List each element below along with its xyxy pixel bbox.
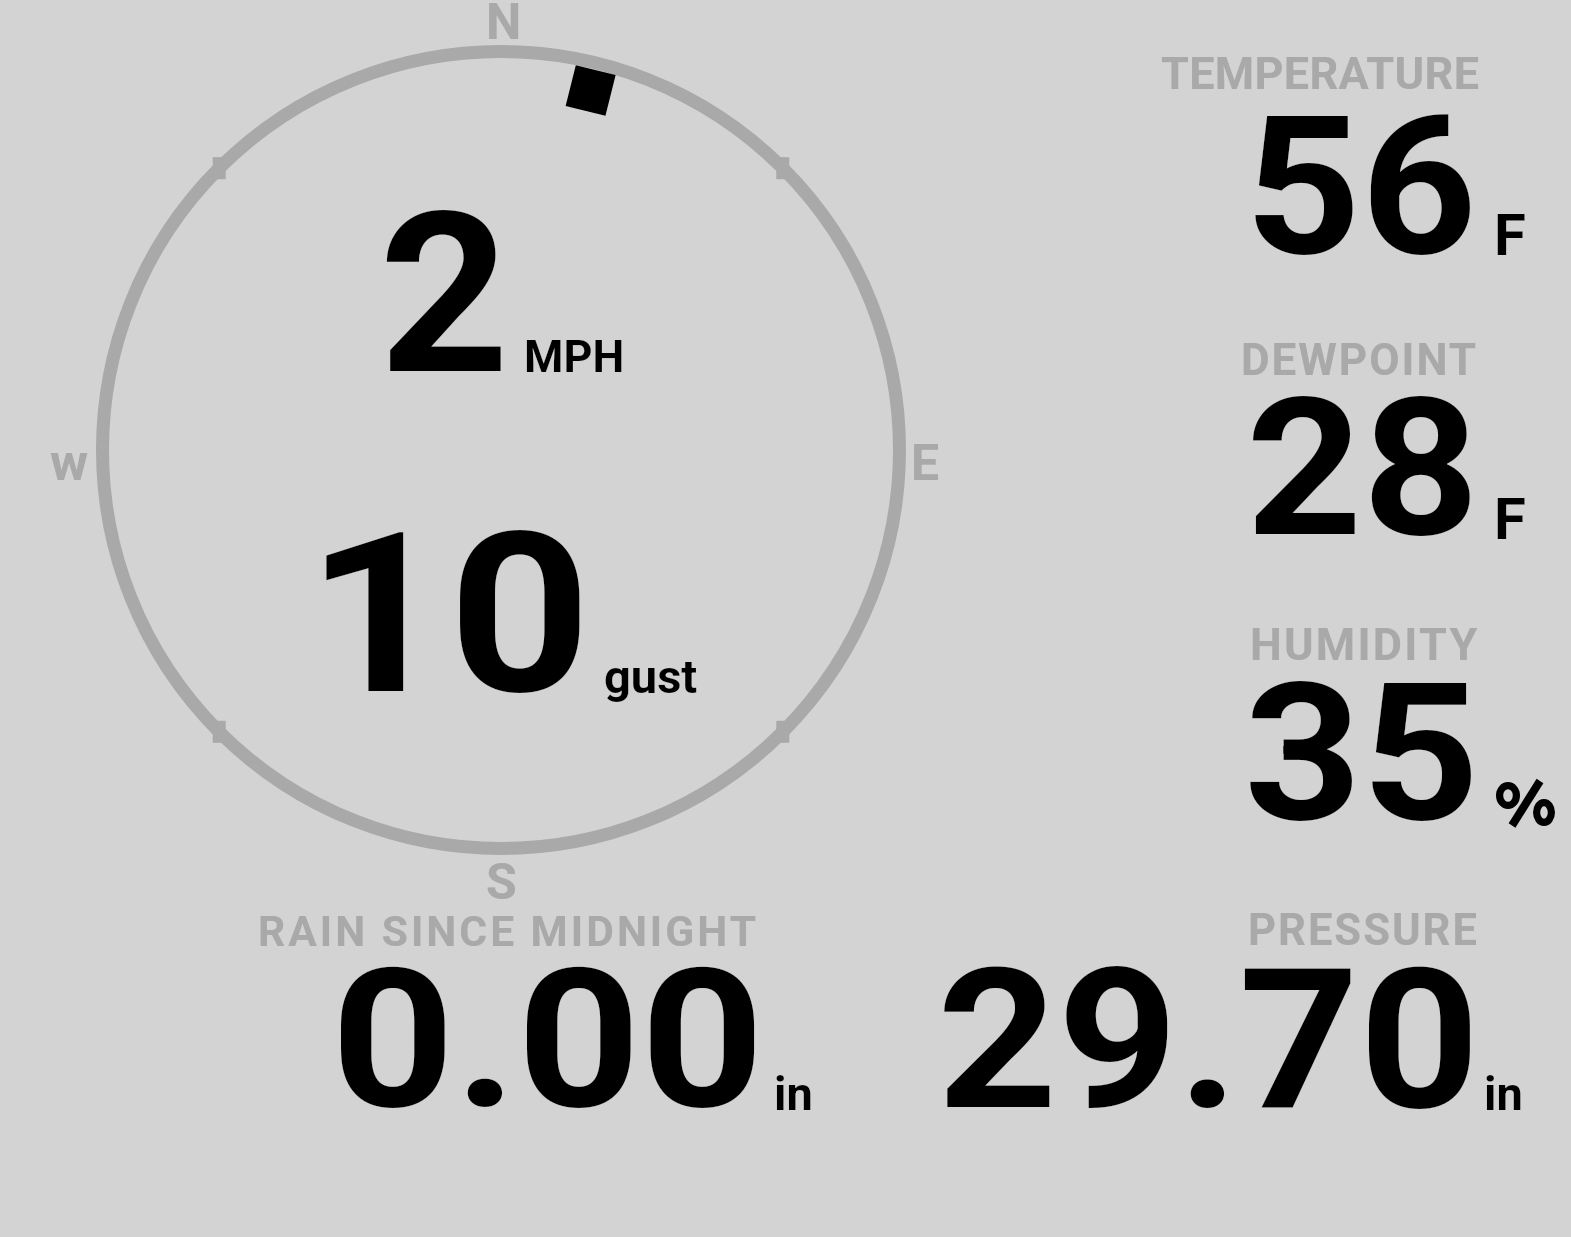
- staticText: MPH: [524, 330, 625, 383]
- staticText: N: [486, 0, 522, 52]
- staticText: gust: [604, 649, 698, 704]
- button[interactable]: Humidity 35 percent: [1130, 612, 1571, 827]
- staticText: DEWPOINT: [1241, 334, 1479, 386]
- button[interactable]: Pressure 29.70 inches: [900, 900, 1540, 1120]
- button[interactable]: Temperature 56 degrees Fahrenheit: [1130, 45, 1571, 260]
- staticText: 29.70: [937, 927, 1480, 1154]
- staticText: 0.00: [331, 927, 765, 1153]
- staticText: TEMPERATURE: [1161, 47, 1480, 100]
- staticText: PRESSURE: [1248, 905, 1479, 956]
- staticText: F: [1494, 485, 1526, 553]
- staticText: RAIN SINCE MIDNIGHT: [258, 907, 760, 957]
- staticText: E: [911, 434, 940, 493]
- staticText: 28: [1246, 356, 1480, 581]
- button[interactable]: Dewpoint 28 degrees Fahrenheit: [1130, 330, 1571, 545]
- staticText: F: [1494, 201, 1526, 269]
- button[interactable]: Rain since midnight 0.00 inches: [230, 900, 830, 1120]
- staticText: in: [1484, 1066, 1523, 1121]
- staticText: w: [50, 432, 89, 493]
- staticText: 56: [1245, 74, 1477, 300]
- staticText: 2: [379, 164, 510, 425]
- staticText: in: [774, 1066, 813, 1121]
- staticText: 10: [306, 485, 591, 745]
- staticText: HUMIDITY: [1250, 618, 1480, 671]
- staticText: S: [486, 853, 517, 912]
- button[interactable]: Wind: 2 miles per hour, gusting 10, from…: [90, 40, 915, 900]
- staticText: 35: [1244, 641, 1480, 866]
